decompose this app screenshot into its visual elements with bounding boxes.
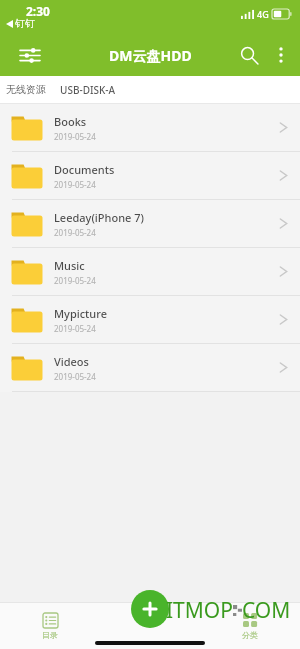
staticText: 2019-05-24 (54, 275, 96, 286)
button[interactable]: Videos (0, 344, 300, 392)
staticText: 2019-05-24 (54, 371, 96, 382)
staticText: 2019-05-24 (54, 227, 96, 238)
button[interactable]: Leeday(iPhone 7) (0, 200, 300, 248)
staticText: 2019-05-24 (54, 131, 96, 142)
staticText: DM云盘HDD (109, 46, 192, 65)
button[interactable]: Filter (14, 39, 46, 71)
staticText: ITMOP (166, 596, 233, 625)
button[interactable]: 分类 (200, 603, 300, 649)
staticText: 目录 (42, 630, 58, 640)
staticText: 2019-05-24 (54, 179, 96, 190)
staticText: 2019-05-24 (54, 323, 96, 334)
staticText: Videos (54, 354, 89, 369)
staticText: Music (54, 258, 85, 273)
button[interactable]: More options (266, 40, 296, 70)
staticText: 无线资源 (6, 83, 46, 96)
staticText: 4G (257, 8, 269, 20)
button[interactable]: Mypicture (0, 296, 300, 344)
staticText: USB-DISK-A (60, 83, 116, 97)
staticText: Documents (54, 162, 115, 177)
button[interactable]: USB-DISK-A (56, 79, 120, 101)
button[interactable]: Search (232, 38, 266, 72)
button[interactable]: Add (131, 590, 169, 628)
button[interactable]: 无线资源 (2, 79, 50, 100)
staticText: COM (242, 596, 291, 625)
button[interactable]: Documents (0, 152, 300, 200)
button[interactable]: Books (0, 104, 300, 152)
button[interactable]: 目录 (0, 603, 100, 649)
staticText: 钉钉 (15, 17, 35, 30)
staticText: Leeday(iPhone 7) (54, 210, 144, 225)
staticText: 分类 (242, 630, 258, 640)
button[interactable]: Music (0, 248, 300, 296)
staticText: Books (54, 114, 87, 129)
staticText: 2:30 (26, 3, 50, 19)
staticText: Mypicture (54, 306, 107, 321)
